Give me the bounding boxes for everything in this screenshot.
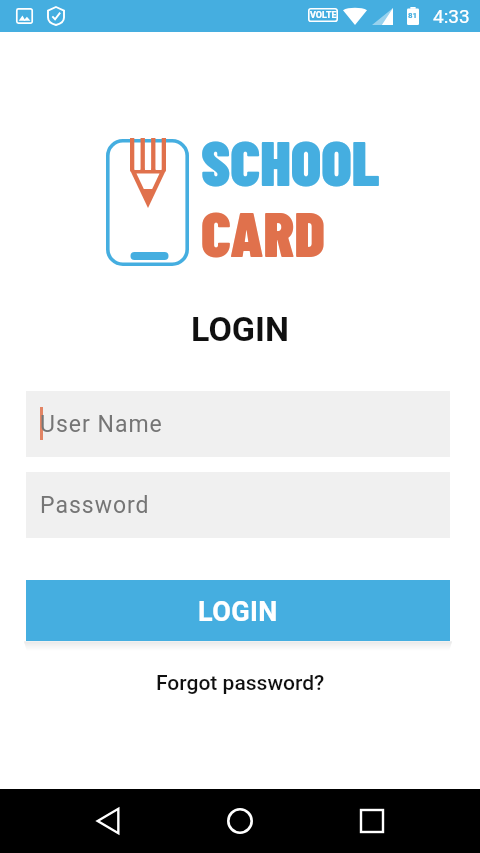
staticText: VOLTE: [310, 10, 337, 21]
staticText: SCHOOL: [201, 123, 380, 199]
staticText: LOGIN: [191, 309, 289, 349]
button[interactable]: Home: [216, 797, 264, 845]
staticText: 4:33: [433, 5, 470, 27]
button[interactable]: User Name: [26, 391, 450, 457]
staticText: User Name: [40, 411, 163, 438]
staticText: Password: [40, 492, 150, 519]
button[interactable]: LOGIN: [26, 580, 450, 641]
button[interactable]: Recents: [348, 797, 396, 845]
button[interactable]: Password: [26, 472, 450, 538]
staticText: CARD: [201, 194, 325, 270]
button[interactable]: Forgot password?: [156, 671, 325, 696]
button[interactable]: Back: [84, 797, 132, 845]
staticText: 81: [408, 11, 418, 20]
staticText: LOGIN: [198, 596, 278, 628]
